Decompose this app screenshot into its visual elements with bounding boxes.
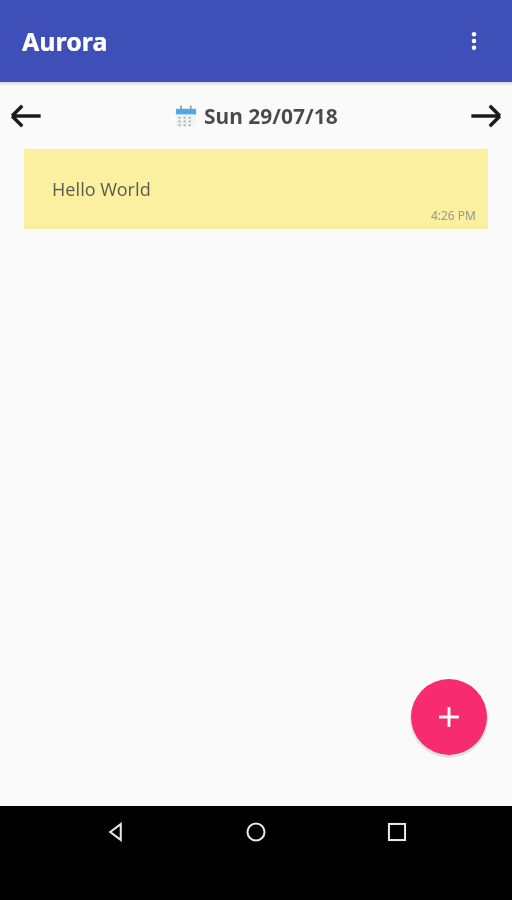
- button[interactable]: Back: [89, 806, 141, 858]
- button[interactable]: Sun 29/07/18: [166, 98, 346, 135]
- button[interactable]: Previous day: [2, 92, 50, 140]
- staticText: Aurora: [22, 24, 108, 58]
- button[interactable]: More options: [446, 13, 502, 69]
- staticText: Sun 29/07/18: [204, 102, 338, 131]
- button[interactable]: Recent apps: [371, 806, 423, 858]
- button[interactable]: Hello World: [24, 149, 488, 229]
- button[interactable]: Next day: [462, 92, 510, 140]
- button[interactable]: Add note: [411, 679, 487, 755]
- button[interactable]: Home: [230, 806, 282, 858]
- staticText: 4:26 PM: [430, 207, 476, 223]
- staticText: Hello World: [52, 177, 151, 202]
